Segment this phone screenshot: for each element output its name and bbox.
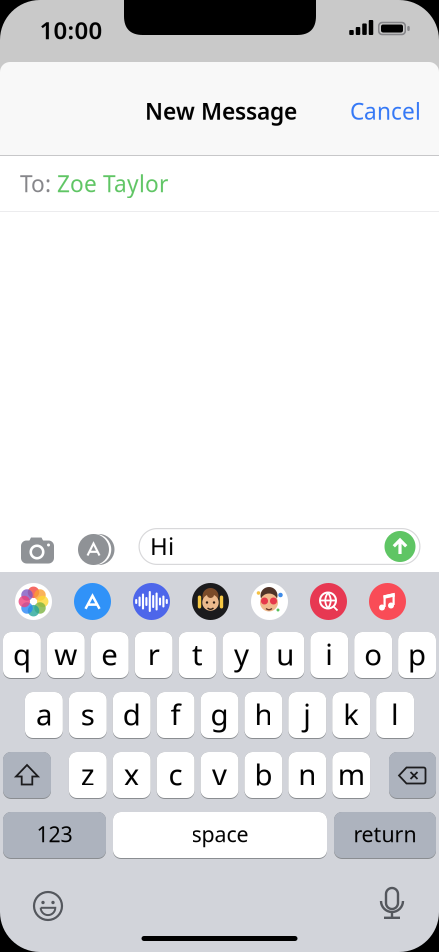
staticText: 10:00 <box>39 14 102 46</box>
button[interactable]: space <box>113 812 327 859</box>
button[interactable]: r <box>135 632 173 679</box>
button[interactable]: Shift <box>3 752 51 799</box>
button[interactable]: Music <box>369 583 406 620</box>
button[interactable]: q <box>3 632 41 679</box>
button[interactable]: Audio <box>133 583 170 620</box>
staticText: y <box>234 634 249 673</box>
button[interactable]: Photos <box>15 583 52 620</box>
staticText: s <box>81 694 95 733</box>
button[interactable]: l <box>376 692 414 739</box>
button[interactable]: s <box>69 692 107 739</box>
staticText: m <box>338 754 365 793</box>
staticText: i <box>325 634 333 673</box>
button[interactable]: Stickers <box>251 583 288 620</box>
staticText: z <box>81 754 95 793</box>
button[interactable]: Camera <box>20 535 54 563</box>
staticText: f <box>171 694 181 733</box>
button[interactable]: Message field <box>138 528 420 565</box>
button[interactable]: e <box>91 632 129 679</box>
staticText: g <box>210 694 228 733</box>
staticText: t <box>192 634 203 673</box>
button[interactable]: c <box>157 752 194 799</box>
button[interactable]: return <box>334 812 436 859</box>
staticText: r <box>148 634 160 673</box>
staticText: h <box>254 694 272 733</box>
button[interactable]: o <box>354 632 392 679</box>
staticText: e <box>101 634 118 673</box>
button[interactable]: y <box>222 632 260 679</box>
staticText: p <box>408 634 426 673</box>
staticText: return <box>353 820 416 848</box>
button[interactable]: f <box>157 692 195 739</box>
staticText: o <box>364 634 382 673</box>
staticText: To: <box>20 168 51 198</box>
button[interactable]: Dictate <box>379 887 405 921</box>
button[interactable]: j <box>288 692 326 739</box>
button[interactable]: h <box>244 692 282 739</box>
button[interactable]: Memoji Stickers <box>192 583 229 620</box>
staticText: d <box>123 694 141 733</box>
staticText: q <box>13 634 31 673</box>
staticText: b <box>254 754 272 793</box>
button[interactable]: w <box>47 632 85 679</box>
staticText: a <box>36 694 52 733</box>
button[interactable]: g <box>201 692 238 739</box>
staticText: c <box>169 754 183 793</box>
button[interactable]: v <box>200 752 238 799</box>
button[interactable]: i <box>310 632 348 679</box>
staticText: Hi <box>150 530 174 562</box>
button[interactable]: App Store <box>74 583 111 620</box>
button[interactable]: k <box>332 692 370 739</box>
staticText: New Message <box>145 96 297 126</box>
button[interactable]: b <box>244 752 282 799</box>
button[interactable]: Emoji <box>32 890 64 922</box>
button[interactable]: Images <box>310 583 347 620</box>
button[interactable]: p <box>398 632 436 679</box>
staticText: u <box>276 634 294 673</box>
button[interactable]: 123 <box>3 812 106 859</box>
staticText: n <box>298 754 316 793</box>
button[interactable]: Cancel <box>350 96 421 126</box>
button[interactable]: a <box>25 692 63 739</box>
button[interactable]: t <box>179 632 216 679</box>
button[interactable]: d <box>113 692 151 739</box>
staticText: Cancel <box>350 96 421 126</box>
staticText: Zoe Taylor <box>57 168 168 198</box>
staticText: j <box>303 694 311 733</box>
button[interactable]: m <box>332 752 370 799</box>
button[interactable]: Send <box>384 531 415 562</box>
staticText: 123 <box>36 820 72 848</box>
button[interactable]: z <box>69 752 107 799</box>
button[interactable]: Delete <box>389 752 436 799</box>
staticText: l <box>391 694 399 733</box>
staticText: x <box>124 754 140 793</box>
button[interactable]: n <box>288 752 326 799</box>
button[interactable]: Apps <box>78 533 118 565</box>
staticText: v <box>212 754 227 793</box>
staticText: k <box>343 694 359 733</box>
staticText: space <box>191 820 248 848</box>
button[interactable]: To: <box>0 156 439 211</box>
button[interactable]: x <box>113 752 151 799</box>
button[interactable]: u <box>266 632 304 679</box>
staticText: w <box>54 634 77 673</box>
